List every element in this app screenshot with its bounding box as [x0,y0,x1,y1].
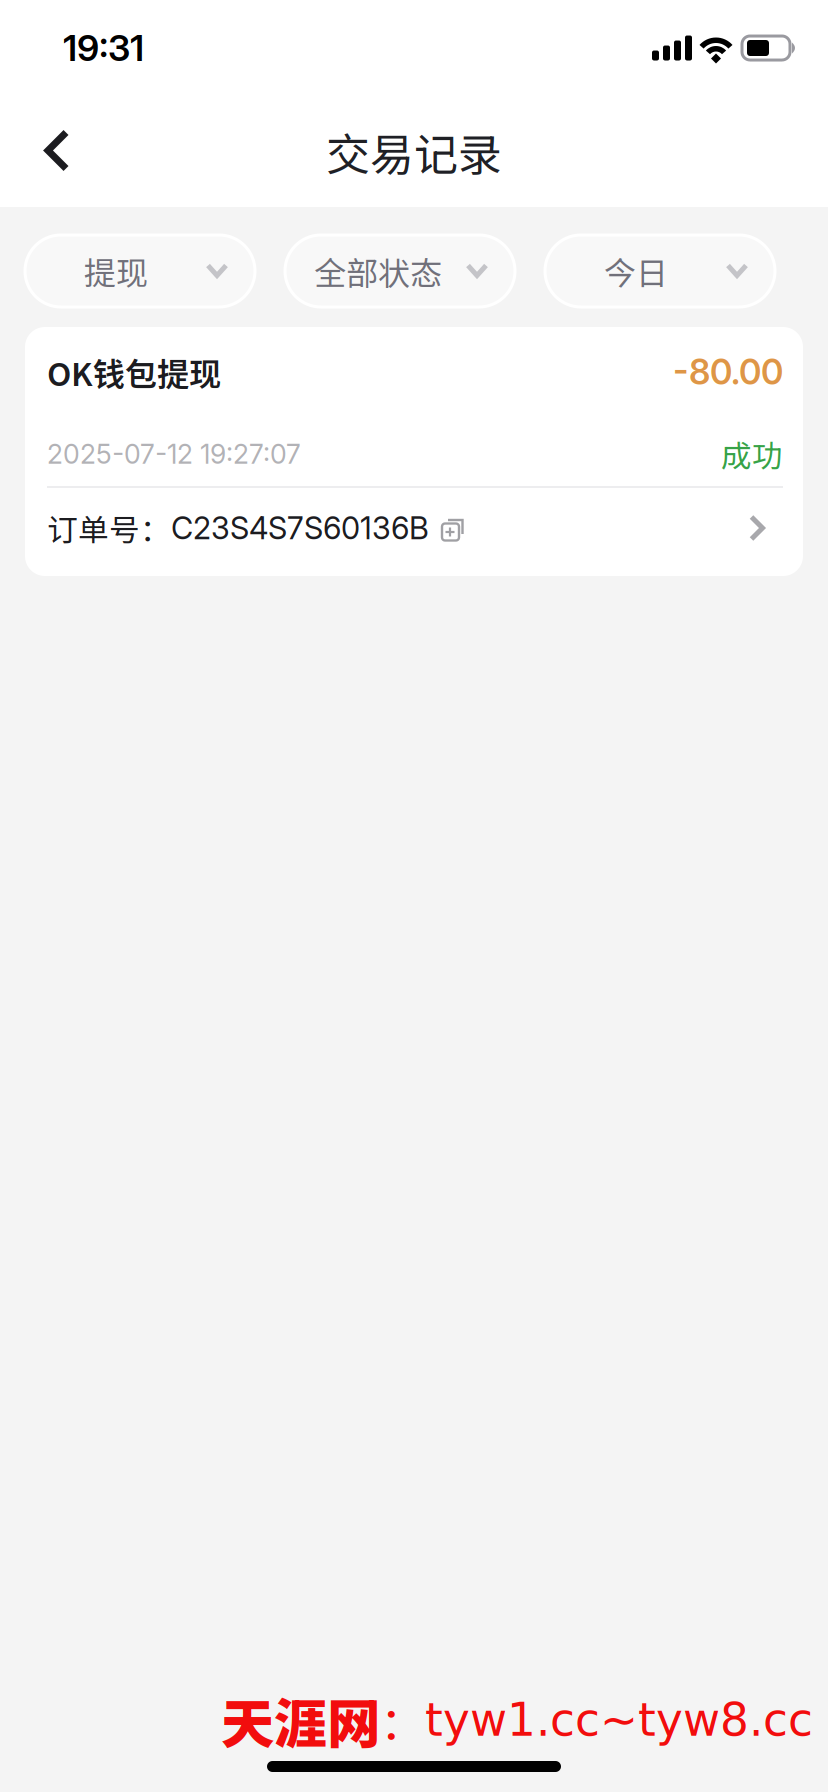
button[interactable]: 返回 [0,106,102,196]
staticText: 今日 [604,248,668,294]
staticText: 交易记录 [326,120,502,183]
staticText: 2025-07-12 19:27:07 [47,438,301,470]
staticText: 提现 [84,248,148,294]
button[interactable]: 今日 [545,235,775,307]
staticText: 天涯网 [221,1681,380,1759]
staticText: C23S4S7S60136B [171,509,429,546]
staticText: 19:31 [63,26,144,70]
button[interactable]: 提现 [25,235,255,307]
staticText: 成功 [721,432,783,476]
staticText: ： [380,1687,425,1753]
staticText: 全部状态 [314,248,442,294]
staticText: -80.00 [673,351,783,393]
staticText: 订单号： [47,506,171,550]
button[interactable]: 订单号： [47,488,783,576]
staticText: tyw1.cc~tyw8.cc [425,1694,813,1746]
staticText: OK钱包提现 [47,349,221,395]
button[interactable]: 全部状态 [285,235,515,307]
